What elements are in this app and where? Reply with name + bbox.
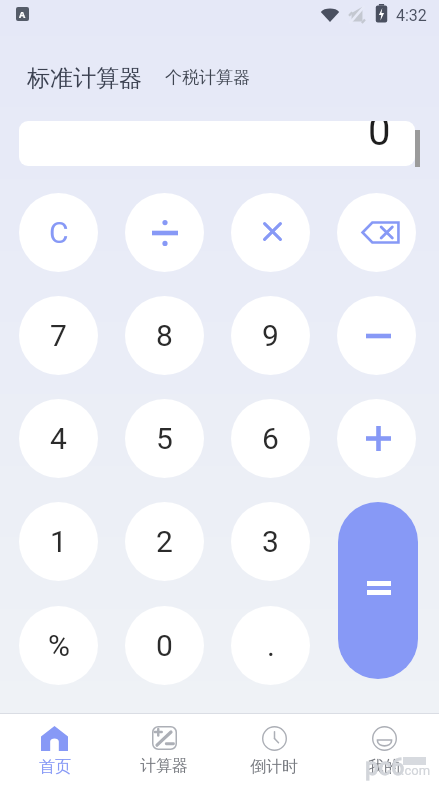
- button[interactable]: 8: [125, 296, 204, 375]
- staticText: 我的: [368, 757, 400, 777]
- button[interactable]: Divide: [125, 193, 204, 272]
- other: Backspace: [361, 221, 400, 244]
- button[interactable]: 2: [125, 502, 204, 581]
- staticText: 3: [262, 524, 279, 559]
- button[interactable]: 计算器: [109, 714, 219, 788]
- staticText: %: [48, 628, 70, 663]
- button[interactable]: %: [19, 606, 98, 685]
- staticText: .com: [401, 763, 431, 778]
- button[interactable]: 4: [19, 399, 98, 478]
- button[interactable]: Minus: [337, 296, 416, 375]
- other: Multiply: [261, 223, 280, 242]
- button[interactable]: 5: [125, 399, 204, 478]
- staticText: 倒计时: [250, 757, 298, 777]
- button[interactable]: 0: [19, 121, 415, 166]
- staticText: 7: [50, 318, 67, 353]
- button[interactable]: 我的: [329, 714, 439, 788]
- button[interactable]: 标准计算器: [27, 64, 142, 93]
- staticText: 4: [50, 421, 67, 456]
- button[interactable]: C: [19, 193, 98, 272]
- staticText: 0: [156, 628, 173, 663]
- staticText: 2: [156, 524, 173, 559]
- staticText: C: [49, 215, 69, 250]
- button[interactable]: 0: [125, 606, 204, 685]
- button[interactable]: 首页: [0, 714, 109, 788]
- button[interactable]: Backspace: [337, 193, 416, 272]
- staticText: 标准计算器: [27, 64, 142, 93]
- button[interactable]: 7: [19, 296, 98, 375]
- button[interactable]: .: [231, 606, 310, 685]
- button[interactable]: 倒计时: [219, 714, 329, 788]
- staticText: 6: [262, 421, 279, 456]
- staticText: 9: [262, 318, 279, 353]
- staticText: 1: [50, 524, 67, 559]
- other: Plus: [364, 426, 389, 451]
- button[interactable]: 个税计算器: [165, 67, 250, 88]
- button[interactable]: Multiply: [231, 193, 310, 272]
- staticText: .: [267, 628, 275, 663]
- staticText: 0: [368, 121, 391, 153]
- staticText: 5: [156, 421, 173, 456]
- button[interactable]: Equals: [338, 502, 418, 679]
- button[interactable]: 6: [231, 399, 310, 478]
- staticText: 个税计算器: [165, 67, 250, 88]
- other: Minus: [364, 333, 389, 339]
- staticText: 计算器: [140, 756, 188, 776]
- button[interactable]: 3: [231, 502, 310, 581]
- staticText: 8: [156, 318, 173, 353]
- other: Divide: [152, 220, 178, 246]
- staticText: 首页: [39, 757, 71, 777]
- button[interactable]: Plus: [337, 399, 416, 478]
- staticText: pc6: [365, 753, 405, 781]
- button[interactable]: 9: [231, 296, 310, 375]
- staticText: A: [19, 8, 26, 20]
- staticText: 4:32: [396, 6, 427, 25]
- button[interactable]: 1: [19, 502, 98, 581]
